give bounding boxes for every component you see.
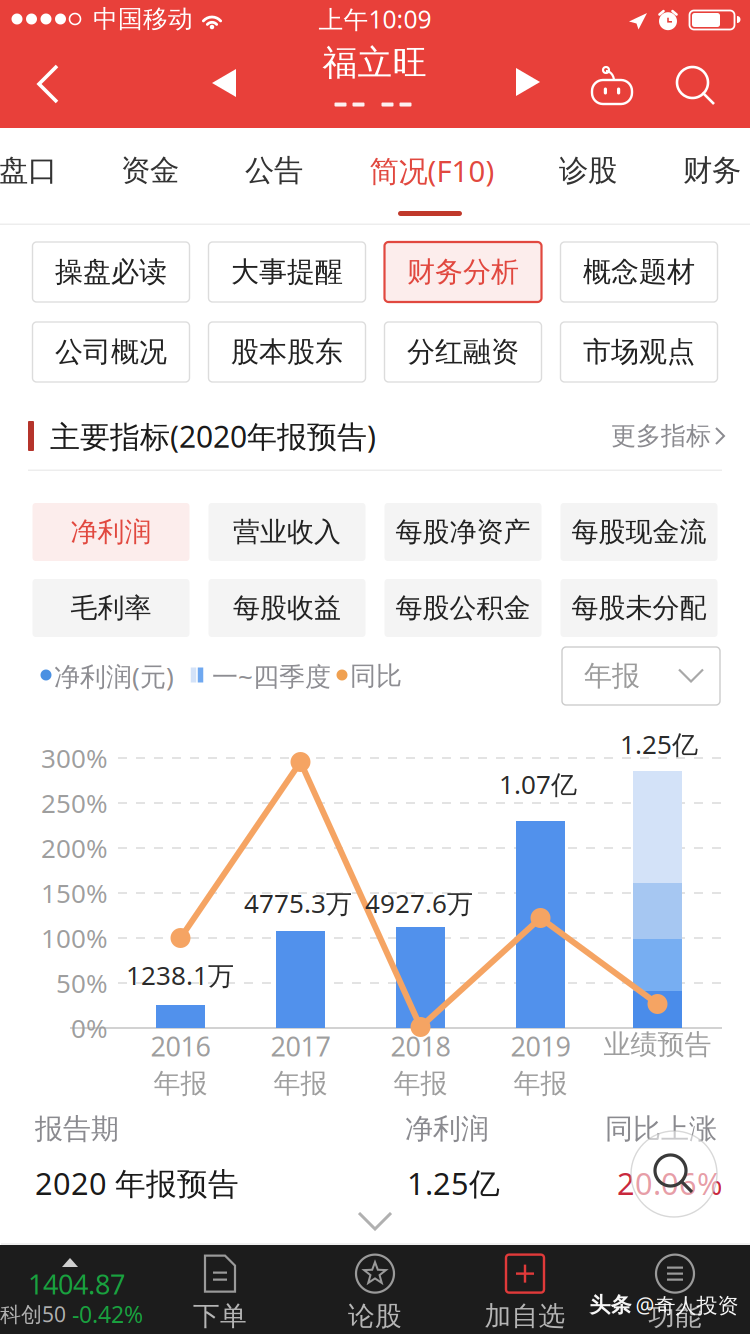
- button[interactable]: 更多指标: [611, 406, 726, 466]
- button[interactable]: 论股: [305, 1245, 445, 1334]
- staticText: 1.07亿: [499, 767, 577, 801]
- staticText: 100%: [41, 921, 108, 955]
- button[interactable]: 公告: [218, 122, 330, 219]
- staticText: 200%: [41, 831, 108, 865]
- staticText: 下单: [193, 1300, 247, 1332]
- staticText: 净利润(元): [54, 659, 174, 693]
- staticText: 分红融资: [407, 335, 519, 369]
- staticText: 简况(F10): [369, 151, 494, 190]
- staticText: 同比: [350, 660, 402, 692]
- staticText: 2020 年报预告: [35, 1163, 239, 1203]
- staticText: 加自选: [484, 1300, 565, 1332]
- staticText: 报告期: [35, 1112, 119, 1146]
- button[interactable]: 每股公积金: [384, 579, 541, 637]
- button[interactable]: 毛利率: [32, 579, 189, 637]
- staticText: 业绩预告: [603, 1028, 711, 1061]
- staticText: 毛利率: [70, 591, 151, 625]
- staticText: 20.06%: [617, 1163, 722, 1203]
- staticText: -0.42%: [72, 1299, 143, 1329]
- staticText: 市场观点: [583, 335, 695, 369]
- staticText: 300%: [41, 741, 108, 775]
- button[interactable]: 公司概况: [32, 322, 189, 382]
- staticText: 2018: [390, 1028, 450, 1064]
- staticText: 2016: [150, 1028, 210, 1064]
- staticText: 盘口: [0, 152, 57, 188]
- staticText: 每股收益: [233, 591, 341, 625]
- staticText: 50%: [56, 966, 108, 1000]
- staticText: 资金: [121, 152, 179, 188]
- staticText: 150%: [41, 876, 108, 910]
- button[interactable]: 财务分析: [384, 242, 541, 302]
- staticText: 每股公积金: [395, 591, 530, 625]
- button[interactable]: 大事提醒: [208, 242, 365, 302]
- staticText: 大事提醒: [231, 255, 343, 289]
- button[interactable]: 搜索: [656, 42, 736, 130]
- button[interactable]: 智能助手: [572, 41, 652, 129]
- button[interactable]: 每股收益: [208, 579, 365, 637]
- staticText: 0%: [71, 1011, 108, 1045]
- button[interactable]: 净利润: [32, 503, 189, 561]
- button[interactable]: 股本股东: [208, 322, 365, 382]
- staticText: 年报: [513, 1067, 567, 1100]
- button[interactable]: 下一只股票: [485, 38, 571, 126]
- button[interactable]: 盘口: [0, 122, 83, 219]
- button[interactable]: 每股现金流: [560, 503, 717, 561]
- staticText: 营业收入: [233, 515, 341, 549]
- staticText: 科创50: [0, 1300, 66, 1328]
- button[interactable]: 财务: [656, 122, 750, 219]
- staticText: 福立旺: [322, 42, 427, 84]
- button[interactable]: 概念题材: [560, 242, 717, 302]
- staticText: 诊股: [559, 152, 617, 188]
- staticText: 一~四季度: [212, 659, 331, 693]
- staticText: 公告: [245, 152, 303, 188]
- button[interactable]: 每股未分配: [560, 579, 717, 637]
- staticText: 净利润: [70, 515, 151, 549]
- staticText: 功能: [648, 1300, 702, 1332]
- staticText: 净利润: [405, 1112, 489, 1146]
- button[interactable]: 上一只股票: [181, 39, 267, 127]
- staticText: 主要指标(2020年报预告): [50, 416, 376, 456]
- staticText: 2019: [510, 1028, 570, 1064]
- button[interactable]: 功能: [605, 1245, 745, 1334]
- staticText: 头条: [589, 1292, 631, 1318]
- staticText: 1404.87: [28, 1266, 125, 1302]
- button[interactable]: 每股净资产: [384, 503, 541, 561]
- staticText: 概念题材: [583, 255, 695, 289]
- button[interactable]: 简况(F10): [357, 122, 507, 219]
- button[interactable]: 市场观点: [560, 322, 717, 382]
- staticText: 年报: [273, 1067, 327, 1100]
- button[interactable]: 年报: [562, 647, 720, 705]
- staticText: 财务分析: [407, 255, 519, 289]
- button[interactable]: 营业收入: [208, 503, 365, 561]
- button[interactable]: 加自选: [455, 1245, 595, 1334]
- staticText: 1238.1万: [126, 958, 234, 992]
- staticText: 公司概况: [55, 335, 167, 369]
- staticText: 论股: [348, 1300, 402, 1332]
- button[interactable]: 资金: [94, 122, 206, 219]
- staticText: 4927.6万: [365, 886, 473, 920]
- staticText: 年报: [393, 1067, 447, 1100]
- staticText: 2017: [270, 1028, 330, 1064]
- staticText: 每股现金流: [571, 515, 706, 549]
- staticText: 更多指标: [611, 421, 711, 451]
- staticText: 1.25亿: [620, 727, 698, 761]
- staticText: 同比上涨: [605, 1112, 717, 1146]
- staticText: 年报: [153, 1067, 207, 1100]
- staticText: 上午10:09: [318, 3, 431, 35]
- button[interactable]: 返回: [0, 40, 96, 128]
- staticText: 财务: [683, 152, 741, 188]
- staticText: 每股未分配: [571, 591, 706, 625]
- staticText: 操盘必读: [55, 255, 167, 289]
- staticText: 每股净资产: [395, 515, 530, 549]
- button[interactable]: 分红融资: [384, 322, 541, 382]
- button[interactable]: 下单: [150, 1245, 290, 1334]
- staticText: 250%: [41, 786, 108, 820]
- button[interactable]: 搜索: [629, 1129, 719, 1219]
- button[interactable]: 操盘必读: [32, 242, 189, 302]
- staticText: @奇人投资: [635, 1291, 738, 1319]
- button[interactable]: 诊股: [532, 122, 644, 219]
- staticText: 股本股东: [231, 335, 343, 369]
- staticText: 4775.3万: [244, 886, 352, 920]
- staticText: 1.25亿: [407, 1163, 500, 1203]
- staticText: 年报: [584, 659, 640, 693]
